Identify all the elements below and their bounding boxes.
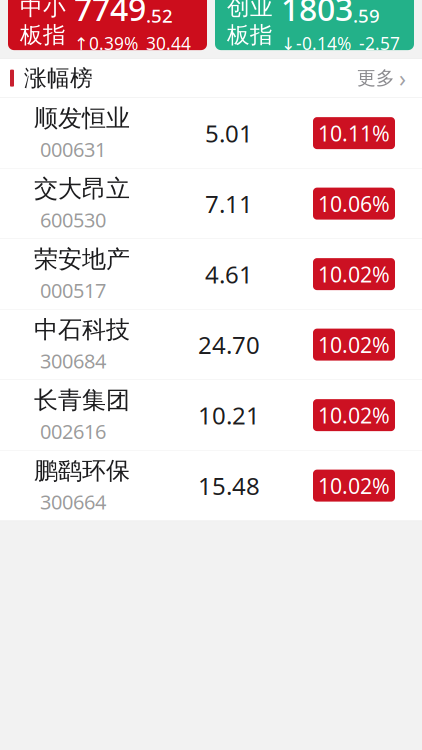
staticText: ↑0.39% [74, 32, 138, 55]
staticText: 10.02% [318, 330, 390, 359]
staticText: 4.61 [205, 258, 253, 290]
staticText: 300684 [40, 348, 106, 374]
staticText: 000631 [40, 136, 106, 163]
button[interactable]: 创业 [215, 0, 414, 50]
button[interactable]: 更多 [353, 57, 410, 99]
button[interactable]: 顺发恒业 [0, 98, 422, 168]
staticText: 24.70 [198, 329, 260, 361]
staticText: 中石科技 [34, 315, 130, 345]
staticText: 中小 [20, 0, 66, 21]
staticText: 10.11% [318, 119, 390, 147]
staticText: 板指 [20, 21, 66, 49]
staticText: 交大昂立 [34, 174, 130, 204]
staticText: 创业 [227, 0, 273, 21]
staticText: 10.02% [318, 401, 390, 429]
staticText: 10.06% [318, 189, 390, 218]
staticText: .59 [353, 3, 380, 28]
button[interactable]: 中石科技 [0, 310, 422, 380]
staticText: 顺发恒业 [34, 104, 130, 133]
staticText: 600530 [40, 207, 106, 233]
button[interactable]: 鹏鹞环保 [0, 451, 422, 521]
staticText: 10.21 [198, 399, 260, 431]
staticText: 荣安地产 [34, 245, 130, 274]
staticText: 7749 [74, 0, 146, 30]
staticText: .52 [146, 3, 173, 28]
staticText: 5.01 [205, 117, 253, 149]
staticText: -2.57 [359, 32, 400, 55]
staticText: 15.48 [198, 470, 260, 502]
staticText: 002616 [40, 418, 106, 445]
button[interactable]: 交大昂立 [0, 169, 422, 239]
staticText: 长青集团 [34, 386, 130, 415]
staticText: 更多 [357, 67, 395, 90]
staticText: 10.02% [318, 260, 390, 288]
staticText: 板指 [227, 21, 273, 49]
staticText: 鹏鹞环保 [34, 456, 130, 486]
staticText: 10.02% [318, 471, 390, 500]
staticText: 1803 [281, 0, 353, 30]
staticText: 300664 [40, 489, 106, 515]
staticText: ↓-0.14% [281, 32, 351, 55]
staticText: 000517 [40, 277, 106, 304]
button[interactable]: 荣安地产 [0, 239, 422, 309]
staticText: 7.11 [205, 188, 253, 220]
staticText: 30.44 [146, 32, 191, 55]
staticText: › [399, 63, 406, 93]
staticText: 涨幅榜 [24, 64, 93, 92]
button[interactable]: 长青集团 [0, 380, 422, 450]
button[interactable]: 中小 [8, 0, 207, 50]
